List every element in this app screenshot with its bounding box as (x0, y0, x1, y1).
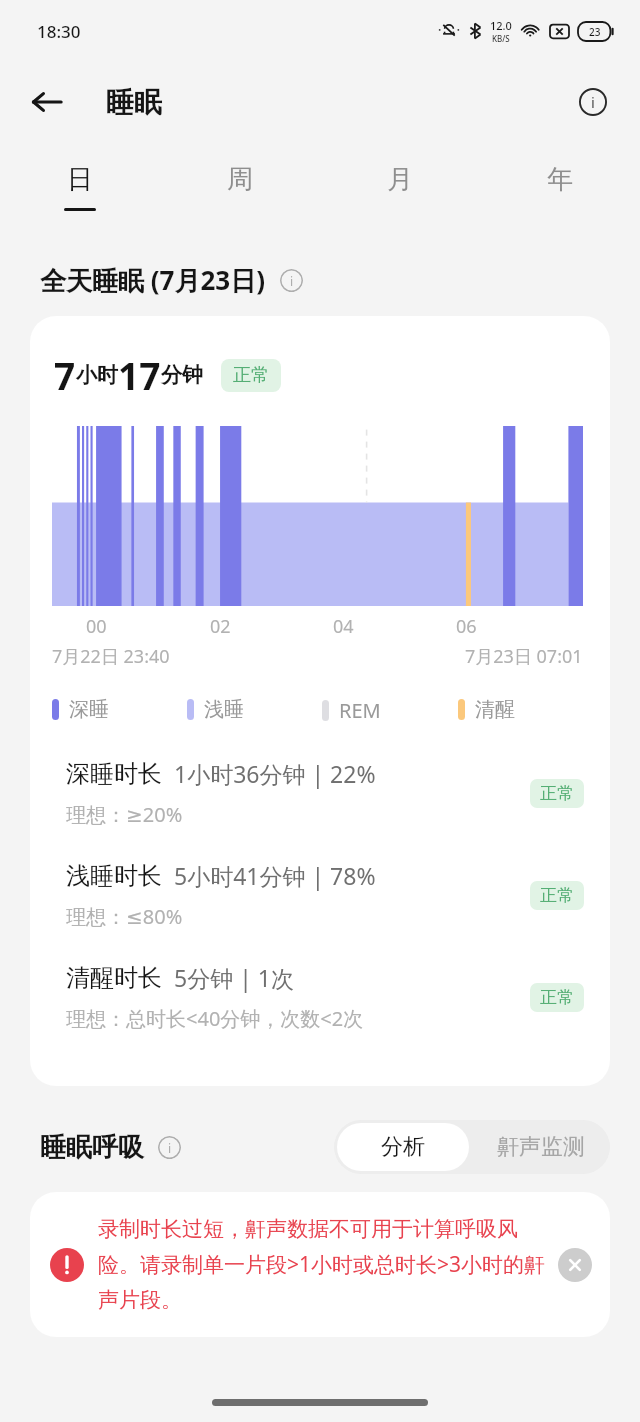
staticText: 04 (333, 614, 354, 639)
button[interactable]: 关闭 (558, 1248, 592, 1282)
staticText: REM (339, 697, 381, 724)
button[interactable]: 返回 (22, 77, 72, 127)
staticText: 06 (456, 614, 477, 639)
staticText: 鼾声监测 (497, 1133, 585, 1161)
staticText: 周 (227, 163, 253, 196)
staticText: 7 (54, 350, 76, 400)
staticText: 全天睡眠 (7月23日) (40, 262, 266, 298)
button[interactable]: 日 (0, 142, 160, 232)
staticText: i (591, 92, 595, 112)
button[interactable]: 周 (160, 142, 320, 232)
button[interactable]: 深睡时长 (30, 758, 610, 828)
staticText: 日 (67, 163, 93, 196)
staticText: 正常 (540, 987, 574, 1008)
staticText: 睡眠 (106, 85, 162, 120)
staticText: 23 (589, 25, 601, 39)
button[interactable]: 浅睡时长 (30, 860, 610, 930)
staticText: 1小时36分钟 | 22% (174, 758, 376, 789)
staticText: 18:30 (37, 20, 81, 43)
staticText: 清醒 (475, 697, 515, 722)
staticText: 12.0 (490, 18, 512, 33)
staticText: 理想：总时长<40分钟，次数<2次 (66, 1005, 364, 1032)
staticText: 分析 (381, 1133, 425, 1161)
staticText: 清醒时长 (66, 963, 162, 993)
staticText: 00 (86, 614, 107, 639)
button[interactable]: 分析 (337, 1123, 469, 1171)
staticText: i (168, 1140, 172, 1156)
staticText: 02 (210, 614, 231, 639)
staticText: 睡眠呼吸 (40, 1131, 144, 1164)
staticText: 正常 (540, 783, 574, 804)
staticText: 深睡 (69, 697, 109, 722)
staticText: i (290, 273, 294, 289)
button[interactable]: 信息 (568, 77, 618, 127)
button[interactable]: 鼾声监测 (472, 1120, 610, 1174)
button[interactable]: 清醒时长 (30, 962, 610, 1032)
button[interactable]: 说明 (280, 269, 303, 292)
staticText: 5分钟 | 1次 (174, 962, 294, 993)
button[interactable]: 月 (320, 142, 480, 232)
staticText: 月 (387, 163, 413, 196)
staticText: 深睡时长 (66, 759, 162, 789)
staticText: 理想：≥20% (66, 801, 183, 828)
button[interactable]: 年 (480, 142, 640, 232)
staticText: 5小时41分钟 | 78% (174, 860, 376, 891)
staticText: 正常 (233, 364, 269, 387)
staticText: 小时 (76, 362, 118, 388)
staticText: 浅睡时长 (66, 861, 162, 891)
staticText: 年 (547, 163, 573, 196)
staticText: 理想：≤80% (66, 903, 183, 930)
staticText: 7月23日 07:01 (465, 644, 583, 669)
staticText: 17 (118, 350, 161, 400)
staticText: 分钟 (161, 362, 203, 388)
staticText: 录制时长过短，鼾声数据不可用于计算呼吸风险。请录制单一片段>1小时或总时长>3小… (98, 1216, 546, 1313)
staticText: 7月22日 23:40 (52, 644, 170, 669)
staticText: 正常 (540, 885, 574, 906)
staticText: 浅睡 (204, 697, 244, 722)
button[interactable]: 说明 (158, 1136, 181, 1159)
staticText: KB/S (492, 33, 510, 44)
